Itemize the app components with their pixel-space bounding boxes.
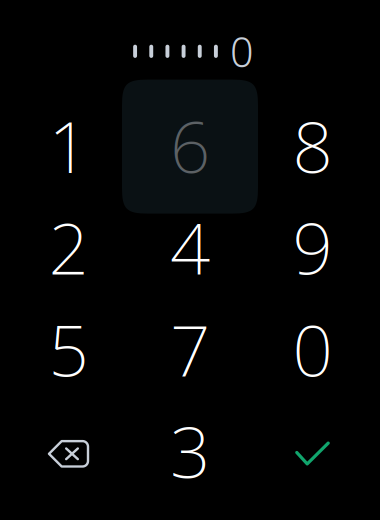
staticText: 8	[292, 99, 332, 192]
button[interactable]: Delete	[8, 401, 128, 499]
button[interactable]: 4	[130, 198, 250, 296]
staticText: 0	[292, 302, 332, 396]
button[interactable]: 9	[252, 198, 372, 296]
button[interactable]: 3	[130, 401, 250, 499]
staticText: 2	[48, 200, 88, 294]
staticText: 7	[170, 302, 210, 396]
button[interactable]: 5	[8, 300, 128, 398]
staticText: 1	[48, 99, 88, 192]
button[interactable]: 6	[130, 96, 250, 194]
staticText: 9	[292, 200, 332, 294]
staticText: 6	[170, 99, 210, 192]
staticText: 4	[170, 200, 210, 294]
staticText: 5	[48, 302, 88, 396]
button[interactable]: 2	[8, 198, 128, 296]
button[interactable]: Confirm	[252, 401, 372, 499]
button[interactable]: 7	[130, 300, 250, 398]
staticText: 3	[170, 404, 210, 497]
button[interactable]: 0	[252, 300, 372, 398]
staticText: 0	[230, 24, 254, 79]
button[interactable]: 8	[252, 96, 372, 194]
button[interactable]: 1	[8, 96, 128, 194]
